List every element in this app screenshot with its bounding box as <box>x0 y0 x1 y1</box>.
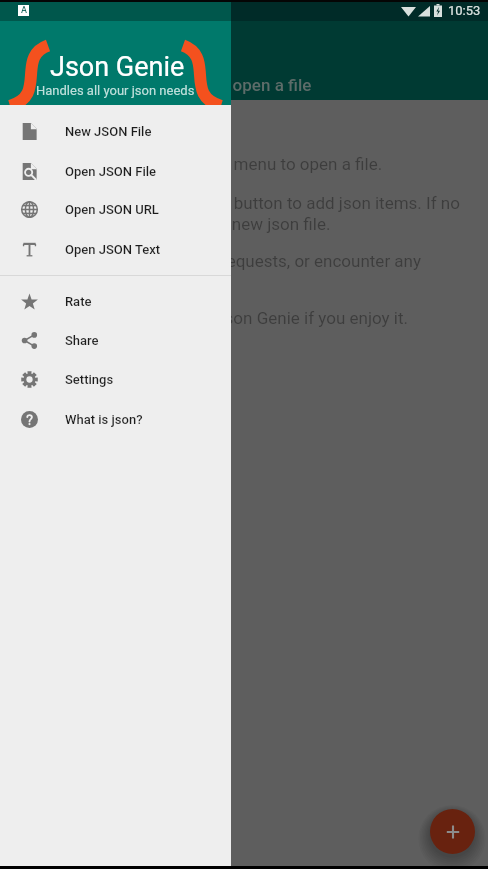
staticText: Json Genie - how to open a file <box>78 75 312 95</box>
staticText: Rate <box>65 294 92 309</box>
staticText: Open JSON URL <box>65 202 159 217</box>
staticText: Please rate Json Genie, rate Json Genie … <box>1 308 408 328</box>
button[interactable]: Open JSON URL <box>0 190 231 229</box>
staticText: Handles all your json needs <box>36 83 195 98</box>
button[interactable]: What is json? <box>0 400 231 439</box>
button[interactable]: Add json item <box>430 809 475 854</box>
staticText: Open JSON File <box>65 164 157 179</box>
staticText: A <box>21 5 27 16</box>
button[interactable]: Share <box>0 321 231 360</box>
button[interactable]: Open JSON File <box>0 152 231 191</box>
button[interactable]: New JSON File <box>0 112 231 151</box>
staticText: New JSON File <box>65 124 152 139</box>
staticText: Settings <box>65 372 114 387</box>
staticText: Please contact me if you have requests, … <box>0 251 422 271</box>
staticText: Share <box>65 333 99 348</box>
button[interactable]: Settings <box>0 360 231 399</box>
staticText: 10:53 <box>448 3 481 18</box>
button[interactable]: Rate <box>0 282 231 321</box>
staticText: What is json? <box>65 412 143 427</box>
staticText: Json Genie <box>50 51 185 83</box>
staticText: problems. <box>16 272 92 292</box>
button[interactable]: Open JSON Text <box>0 230 231 269</box>
staticText: Open JSON Text <box>65 242 161 257</box>
staticText: Use the bottom right round + button to a… <box>9 193 460 213</box>
staticText: json file is open it creates a new json … <box>18 214 331 234</box>
staticText: Use the top left drawer icon, menu to op… <box>19 154 383 174</box>
